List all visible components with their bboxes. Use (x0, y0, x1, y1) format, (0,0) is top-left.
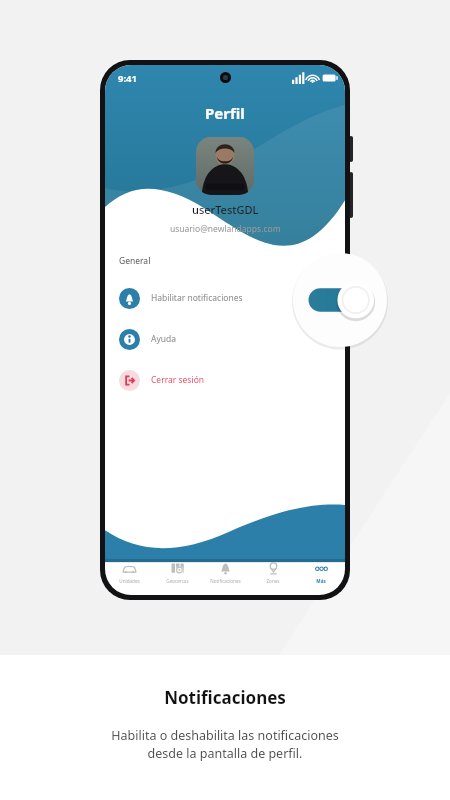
staticText: Habilita o deshabilita las notificacione… (111, 727, 339, 762)
staticText: Ayuda (151, 333, 177, 345)
button[interactable]: Ayuda (105, 324, 345, 354)
staticText: Notificaciones (210, 578, 241, 584)
button[interactable]: Cerrar sesión (105, 365, 345, 395)
button[interactable]: Más (297, 561, 345, 584)
staticText: Geocercas (166, 578, 189, 584)
staticText: Más (316, 578, 326, 584)
button[interactable]: Habilitar notificaciones (105, 283, 345, 313)
staticText: Cerrar sesión (151, 374, 205, 386)
staticText: General (119, 255, 151, 267)
staticText: Notificaciones (164, 686, 286, 709)
staticText: Unidades (119, 578, 140, 584)
button[interactable]: Zonas (249, 561, 297, 584)
staticText: Zonas (266, 578, 280, 584)
button[interactable]: Unidades (105, 561, 153, 584)
button[interactable]: Notificaciones (201, 561, 249, 584)
staticText: Habilitar notificaciones (151, 292, 243, 304)
staticText: 9:41 (118, 72, 137, 85)
staticText: userTestGDL (192, 202, 259, 217)
staticText: Perfil (205, 103, 245, 123)
staticText: usuario@newlandapps.com (170, 223, 281, 235)
button[interactable]: Geocercas (153, 561, 201, 584)
